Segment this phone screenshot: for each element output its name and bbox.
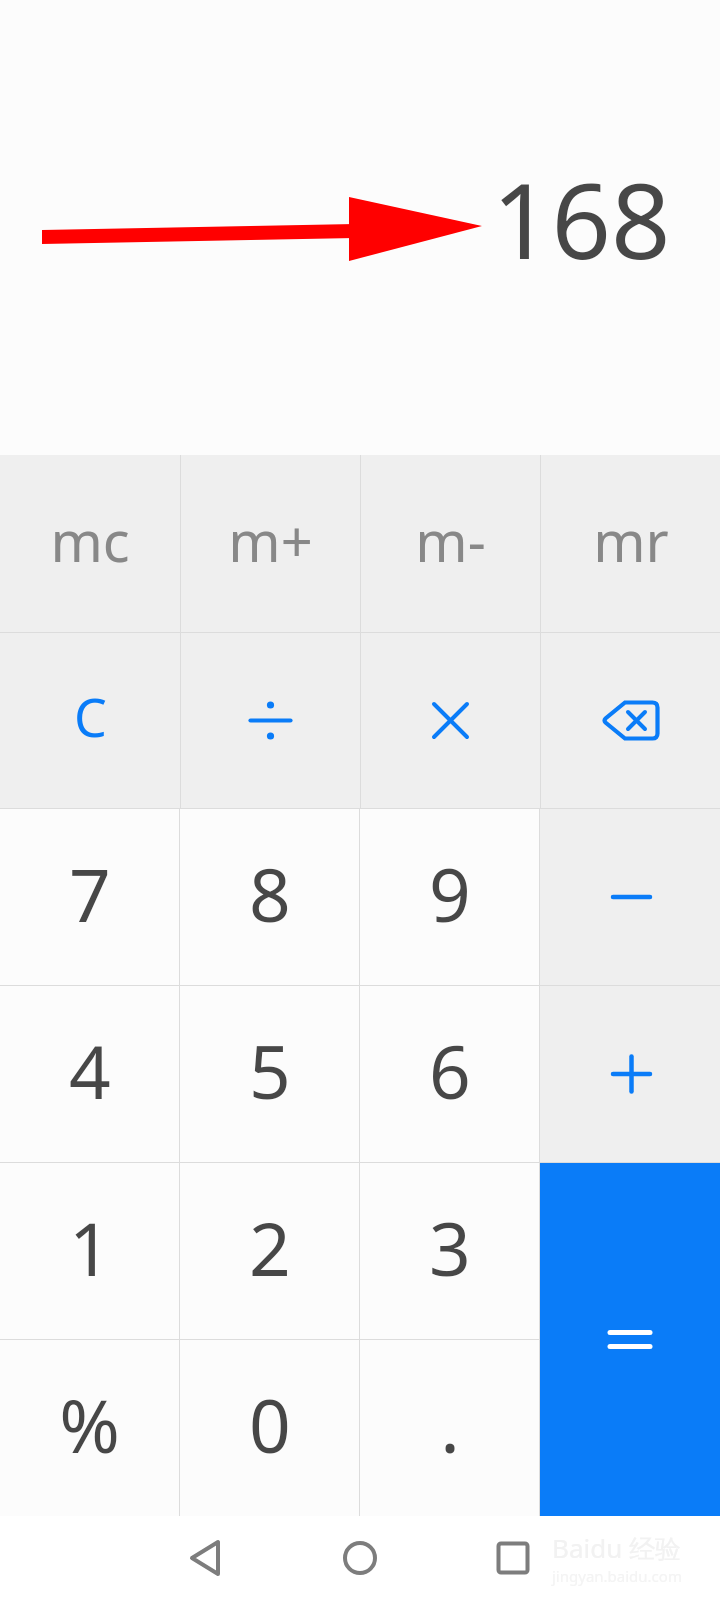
staticText: 1 bbox=[69, 1198, 111, 1297]
staticText: 0 bbox=[249, 1375, 291, 1474]
staticText: % bbox=[59, 1375, 120, 1474]
button[interactable]: C bbox=[0, 633, 180, 808]
staticText: 7 bbox=[69, 844, 111, 943]
staticText: C bbox=[74, 681, 107, 752]
button[interactable]: mr bbox=[541, 455, 720, 632]
staticText: 3 bbox=[429, 1198, 471, 1297]
button[interactable]: Delete bbox=[541, 633, 720, 808]
button[interactable]: Multiply bbox=[361, 633, 540, 808]
staticText: m+ bbox=[228, 502, 313, 578]
button[interactable]: Plus bbox=[540, 986, 720, 1162]
staticText: Baidu 经验 bbox=[552, 1530, 682, 1566]
button[interactable]: Minus bbox=[540, 809, 720, 985]
button[interactable]: 4 bbox=[0, 986, 179, 1162]
button[interactable]: 9 bbox=[360, 809, 539, 985]
staticText: 2 bbox=[249, 1198, 291, 1297]
staticText: jingyan.baidu.com bbox=[552, 1566, 682, 1586]
button[interactable]: 5 bbox=[180, 986, 359, 1162]
button[interactable]: mc bbox=[0, 455, 180, 632]
staticText: 6 bbox=[429, 1021, 471, 1120]
button[interactable]: 1 bbox=[0, 1163, 179, 1339]
button[interactable]: 2 bbox=[180, 1163, 359, 1339]
staticText: 9 bbox=[429, 844, 471, 943]
staticText: 5 bbox=[249, 1021, 291, 1120]
button[interactable]: 7 bbox=[0, 809, 179, 985]
button[interactable]: Back bbox=[145, 1516, 265, 1600]
staticText: . bbox=[440, 1375, 460, 1474]
button[interactable]: m+ bbox=[181, 455, 360, 632]
button[interactable]: % bbox=[0, 1340, 179, 1516]
button[interactable]: 6 bbox=[360, 986, 539, 1162]
staticText: 4 bbox=[69, 1021, 111, 1120]
button[interactable]: 8 bbox=[180, 809, 359, 985]
staticText: mc bbox=[50, 502, 130, 578]
button[interactable]: . bbox=[360, 1340, 539, 1516]
button[interactable]: Home bbox=[300, 1516, 420, 1600]
staticText: m- bbox=[415, 502, 486, 578]
button[interactable]: 3 bbox=[360, 1163, 539, 1339]
button[interactable]: 0 bbox=[180, 1340, 359, 1516]
button[interactable]: Divide bbox=[181, 633, 360, 808]
button[interactable]: Recents bbox=[453, 1516, 573, 1600]
staticText: 168 bbox=[492, 148, 671, 290]
button[interactable]: m- bbox=[361, 455, 540, 632]
button[interactable]: Equals bbox=[540, 1163, 720, 1516]
staticText: 8 bbox=[249, 844, 291, 943]
staticText: mr bbox=[593, 502, 669, 578]
